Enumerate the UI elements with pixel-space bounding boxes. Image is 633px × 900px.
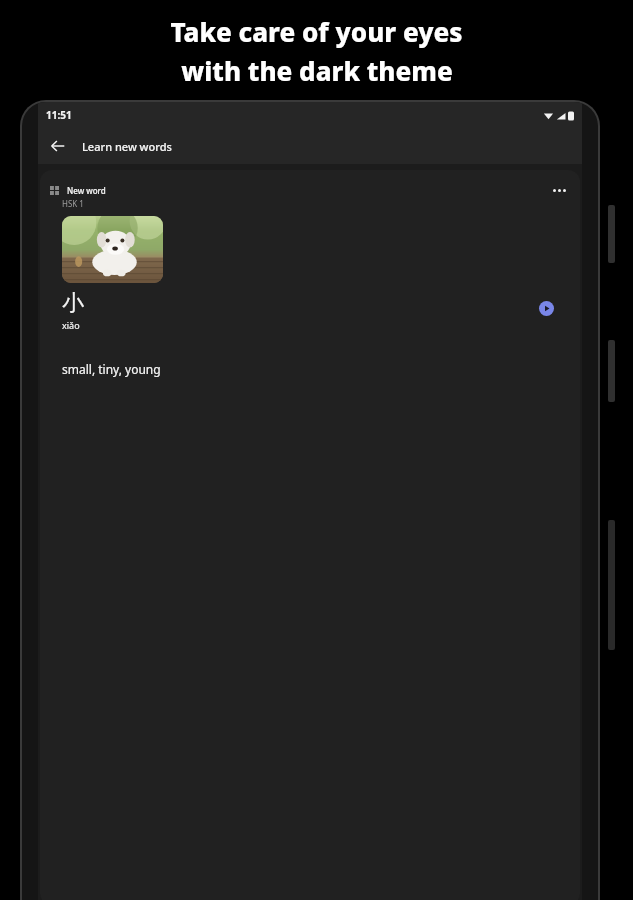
button[interactable]: Back bbox=[44, 132, 72, 160]
button[interactable]: Play pronunciation bbox=[534, 296, 558, 320]
staticText: small, tiny, young bbox=[62, 361, 161, 377]
staticText: New word bbox=[67, 185, 106, 196]
button[interactable]: More options bbox=[548, 179, 570, 201]
staticText: xiǎo bbox=[62, 319, 80, 331]
button[interactable] bbox=[62, 216, 163, 283]
staticText: Take care of your eyes bbox=[170, 14, 463, 49]
staticText: 小 bbox=[62, 289, 84, 317]
staticText: Learn new words bbox=[82, 139, 172, 154]
staticText: 11:51 bbox=[46, 108, 72, 122]
staticText: with the dark theme bbox=[181, 53, 453, 88]
staticText: HSK 1 bbox=[62, 198, 84, 209]
